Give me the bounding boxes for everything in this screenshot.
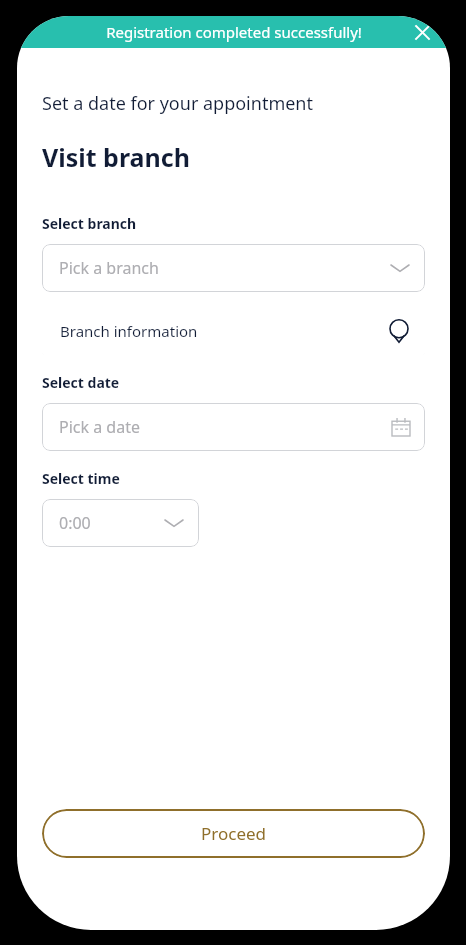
staticText: Set a date for your appointment	[42, 91, 313, 116]
staticText: Proceed	[201, 822, 267, 845]
staticText: Select time	[42, 469, 120, 488]
button[interactable]: Open calendar	[42, 403, 425, 451]
staticText: Pick a date	[59, 416, 140, 438]
staticText: Select branch	[42, 214, 137, 233]
button[interactable]: Proceed	[42, 809, 425, 858]
staticText: Visit branch	[42, 140, 190, 174]
staticText: Registration completed successfully!	[106, 22, 362, 42]
button[interactable]: Close	[408, 18, 436, 46]
button[interactable]: Open time list	[42, 499, 199, 547]
button[interactable]: Open branch list	[42, 244, 425, 292]
staticText: Branch information	[60, 321, 198, 341]
staticText: Select date	[42, 373, 120, 392]
button[interactable]: Branch information	[42, 307, 425, 355]
staticText: Pick a branch	[59, 257, 159, 279]
staticText: 0:00	[59, 512, 91, 534]
